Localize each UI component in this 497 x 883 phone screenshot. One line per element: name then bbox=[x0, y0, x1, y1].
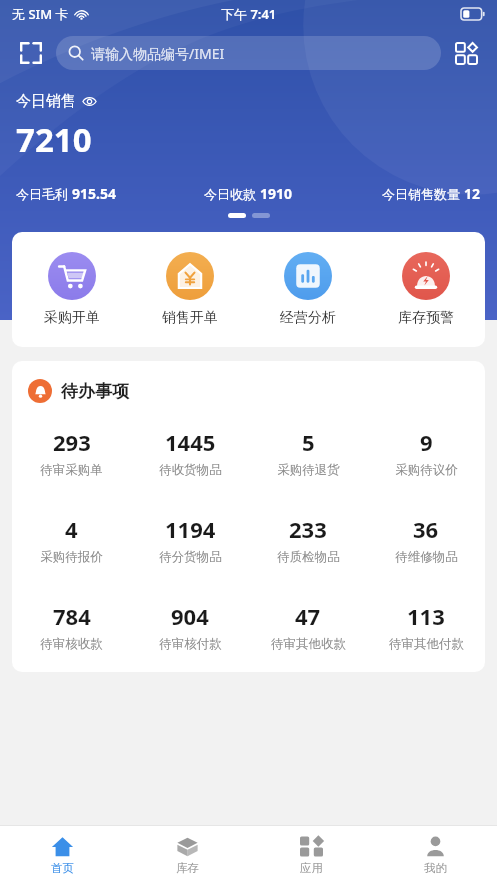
staticText: 采购开单 bbox=[44, 309, 100, 327]
staticText: 无 SIM 卡 bbox=[12, 5, 69, 23]
staticText: 47 bbox=[295, 601, 321, 631]
button[interactable]: 今日销售 bbox=[16, 92, 97, 111]
staticText: 36 bbox=[413, 514, 439, 544]
button[interactable]: 销售开单 bbox=[131, 250, 249, 329]
staticText: 待审核付款 bbox=[159, 636, 222, 652]
staticText: 待审其他收款 bbox=[271, 636, 346, 652]
button[interactable]: 1194 bbox=[131, 510, 249, 569]
staticText: 待审采购单 bbox=[40, 462, 103, 478]
staticText: 9 bbox=[420, 427, 433, 457]
staticText: 今日销售 bbox=[16, 92, 76, 111]
staticText: 待办事项 bbox=[61, 381, 129, 402]
staticText: 待分货物品 bbox=[159, 549, 222, 565]
button[interactable]: 经营分析 bbox=[249, 250, 367, 329]
staticText: 采购待报价 bbox=[40, 549, 103, 565]
staticText: 今日毛利 bbox=[16, 185, 72, 203]
button[interactable]: 4 bbox=[12, 510, 131, 569]
staticText: 待维修物品 bbox=[395, 549, 458, 565]
staticText: 首页 bbox=[51, 861, 74, 875]
button[interactable]: 36 bbox=[367, 510, 485, 569]
staticText: 今日销售数量 bbox=[382, 185, 464, 203]
staticText: 库存 bbox=[176, 861, 199, 875]
staticText: 904 bbox=[171, 601, 209, 631]
button[interactable]: 904 bbox=[131, 597, 249, 656]
staticText: 请输入物品编号/IMEI bbox=[91, 44, 225, 63]
button[interactable]: 采购开单 bbox=[12, 250, 131, 329]
staticText: 915.54 bbox=[72, 184, 116, 203]
staticText: 7210 bbox=[16, 117, 92, 162]
staticText: 233 bbox=[289, 514, 327, 544]
staticText: 待审核收款 bbox=[40, 636, 103, 652]
staticText: 784 bbox=[53, 601, 91, 631]
staticText: 113 bbox=[407, 601, 445, 631]
staticText: 1445 bbox=[165, 427, 216, 457]
staticText: 经营分析 bbox=[280, 309, 336, 327]
button[interactable]: 待办事项 bbox=[28, 379, 129, 403]
button[interactable]: 47 bbox=[249, 597, 367, 656]
staticText: 5 bbox=[302, 427, 315, 457]
button[interactable]: 首页 bbox=[0, 826, 125, 883]
button[interactable]: 293 bbox=[12, 423, 131, 482]
staticText: 待质检物品 bbox=[277, 549, 340, 565]
button[interactable]: 5 bbox=[249, 423, 367, 482]
staticText: 采购待议价 bbox=[395, 462, 458, 478]
button[interactable]: 应用 bbox=[249, 826, 373, 883]
staticText: 待收货物品 bbox=[159, 462, 222, 478]
staticText: 库存预警 bbox=[398, 309, 454, 327]
button[interactable]: Categories bbox=[449, 36, 483, 70]
staticText: 1910 bbox=[260, 184, 293, 203]
button[interactable]: 库存预警 bbox=[367, 250, 485, 329]
staticText: 我的 bbox=[424, 861, 447, 875]
staticText: 1194 bbox=[165, 514, 216, 544]
button[interactable]: 我的 bbox=[373, 826, 497, 883]
staticText: 应用 bbox=[300, 861, 323, 875]
button[interactable]: 784 bbox=[12, 597, 131, 656]
button[interactable]: Scan bbox=[14, 36, 48, 70]
staticText: 采购待退货 bbox=[277, 462, 340, 478]
button[interactable]: 233 bbox=[249, 510, 367, 569]
staticText: 4 bbox=[65, 514, 78, 544]
button[interactable]: 库存 bbox=[125, 826, 249, 883]
staticText: 下午 7:41 bbox=[221, 5, 277, 23]
button[interactable]: 113 bbox=[367, 597, 485, 656]
staticText: 293 bbox=[53, 427, 91, 457]
button[interactable]: 1445 bbox=[131, 423, 249, 482]
staticText: 待审其他付款 bbox=[389, 636, 464, 652]
button[interactable]: 9 bbox=[367, 423, 485, 482]
staticText: 今日收款 bbox=[204, 185, 260, 203]
staticText: 12 bbox=[464, 184, 481, 203]
button[interactable]: 请输入物品编号/IMEI bbox=[56, 36, 441, 70]
staticText: 销售开单 bbox=[162, 309, 218, 327]
